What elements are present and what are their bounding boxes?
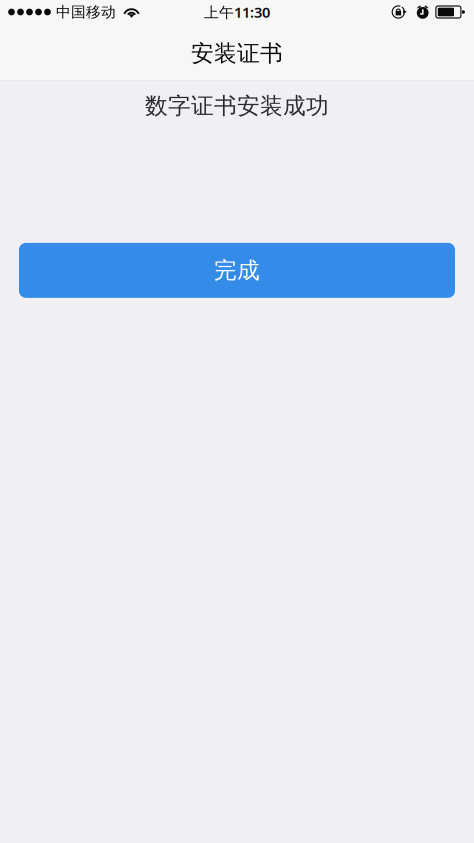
staticText: 完成 [214, 256, 260, 284]
staticText: 数字证书安装成功 [145, 92, 329, 120]
staticText: 中国移动 [56, 3, 116, 21]
staticText: 上午11:30 [204, 2, 270, 22]
button[interactable]: 完成 [19, 243, 455, 298]
staticText: 安装证书 [191, 40, 283, 67]
